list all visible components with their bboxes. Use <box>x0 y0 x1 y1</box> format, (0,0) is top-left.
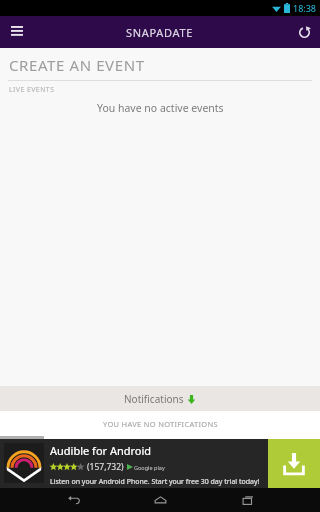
button[interactable]: Notifications <box>0 386 320 411</box>
staticText: Audible for Android <box>50 443 152 458</box>
staticText: Google play <box>134 464 165 471</box>
staticText: YOU HAVE NO NOTIFICATIONS <box>103 419 218 429</box>
button[interactable]: Refresh <box>293 21 315 43</box>
staticText: 18:38 <box>293 2 317 14</box>
button[interactable]: Back <box>58 488 88 512</box>
button[interactable]: Open navigation menu <box>6 21 28 43</box>
button[interactable]: Recent apps <box>233 488 263 512</box>
staticText: You have no active events <box>97 101 224 115</box>
staticText: LIVE EVENTS <box>9 85 55 95</box>
button[interactable]: Install <box>268 439 320 488</box>
staticText: (157,732) <box>87 461 124 473</box>
button[interactable]: CREATE AN EVENT <box>9 55 145 75</box>
staticText: SNAPADATE <box>126 25 194 40</box>
button[interactable]: Audible for Android <box>0 439 268 488</box>
button[interactable]: Home <box>145 488 175 512</box>
staticText: Notifications <box>124 392 184 406</box>
staticText: Listen on your Android Phone. Start your… <box>50 477 260 487</box>
